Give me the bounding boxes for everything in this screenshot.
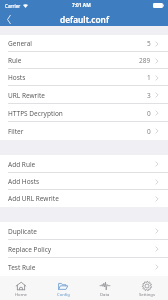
button[interactable]: Rule: [0, 52, 168, 69]
button[interactable]: Data: [84, 276, 126, 300]
staticText: 0: [147, 127, 151, 136]
staticText: Settings: [139, 292, 155, 298]
button[interactable]: General: [0, 35, 168, 52]
staticText: default.conf: [60, 14, 109, 25]
button[interactable]: Add Hosts: [0, 173, 168, 190]
staticText: Data: [100, 292, 110, 298]
staticText: HTTPS Decryption: [8, 109, 63, 118]
staticText: Replace Policy: [8, 245, 52, 254]
staticText: Hosts: [8, 73, 26, 82]
button[interactable]: Test Rule: [0, 258, 168, 276]
staticText: 0: [147, 109, 151, 118]
staticText: Test Rule: [8, 263, 36, 272]
button[interactable]: Add URL Rewrite: [0, 190, 168, 207]
staticText: Home: [15, 292, 27, 298]
staticText: 7:01 AM: [72, 2, 91, 9]
staticText: 1: [147, 73, 151, 82]
staticText: Filter: [8, 127, 24, 136]
staticText: Add Hosts: [8, 177, 40, 186]
button[interactable]: Replace Policy: [0, 240, 168, 258]
staticText: Duplicate: [8, 227, 37, 236]
staticText: General: [8, 39, 32, 48]
staticText: Config: [57, 292, 70, 298]
button[interactable]: Back: [0, 12, 16, 26]
staticText: 289: [139, 56, 151, 65]
staticText: 5: [147, 39, 151, 48]
button[interactable]: Settings: [126, 276, 168, 300]
button[interactable]: HTTPS Decryption: [0, 104, 168, 122]
staticText: Add URL Rewrite: [8, 194, 59, 203]
staticText: 3: [147, 91, 151, 100]
button[interactable]: URL Rewrite: [0, 86, 168, 104]
staticText: Carrier: [5, 3, 21, 9]
button[interactable]: Add Rule: [0, 155, 168, 173]
button[interactable]: Duplicate: [0, 222, 168, 240]
button[interactable]: Config: [42, 276, 84, 300]
staticText: URL Rewrite: [8, 91, 45, 100]
staticText: Rule: [8, 56, 22, 65]
staticText: Add Rule: [8, 160, 36, 169]
button[interactable]: Filter: [0, 122, 168, 140]
button[interactable]: Home: [0, 276, 42, 300]
button[interactable]: Hosts: [0, 69, 168, 86]
